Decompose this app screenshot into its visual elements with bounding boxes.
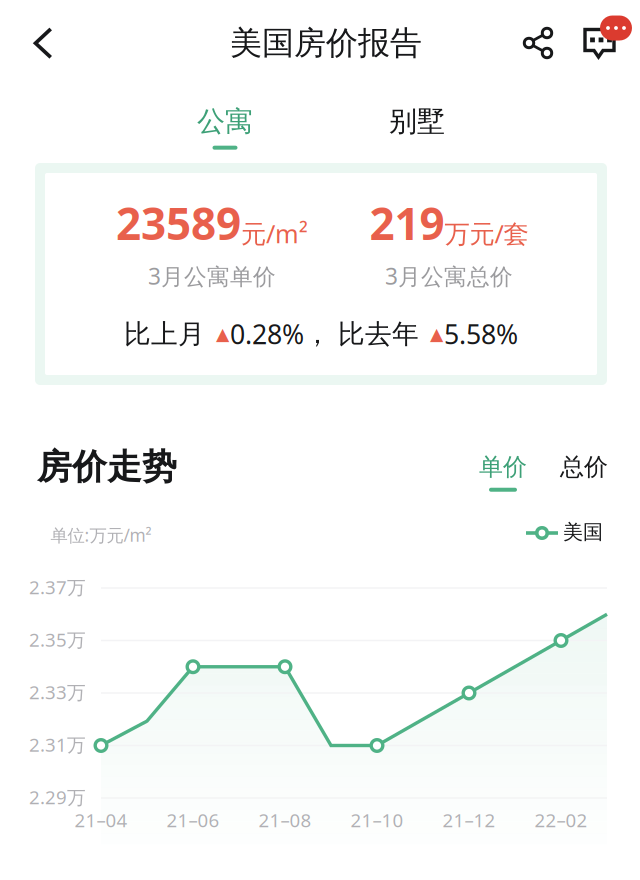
button[interactable]: 公寓 [150, 99, 300, 155]
staticText: 2.29万 [29, 785, 86, 809]
staticText: 23589 [116, 194, 241, 252]
button[interactable]: Share [511, 16, 565, 70]
staticText: ▲ [430, 324, 443, 344]
staticText: 房价走势 [37, 446, 177, 488]
button[interactable]: 别墅 [342, 99, 492, 155]
staticText: 21–04 [74, 808, 127, 832]
staticText: 21–10 [350, 808, 403, 832]
staticText: 3月公寓单价 [148, 261, 276, 291]
staticText: 万元/套 [444, 216, 528, 250]
button[interactable]: 总价 [549, 449, 619, 495]
staticText: 0.28% [230, 316, 304, 352]
staticText: 2.33万 [29, 680, 86, 704]
button[interactable]: Back [16, 15, 70, 71]
staticText: 2.37万 [29, 575, 86, 599]
staticText: 3月公寓总价 [385, 261, 513, 291]
staticText: 22–02 [534, 808, 587, 832]
staticText: 219 [369, 194, 444, 252]
staticText: 美国 [563, 520, 603, 544]
staticText: 单位:万元/m² [50, 523, 151, 546]
staticText: 单价 [479, 452, 527, 482]
staticText: 21–12 [442, 808, 495, 832]
staticText: 元/m² [241, 216, 308, 250]
staticText: 21–06 [166, 808, 219, 832]
staticText: 公寓 [197, 104, 253, 139]
staticText: ▲ [216, 324, 229, 344]
staticText: 美国房价报告 [230, 23, 422, 63]
staticText: 总价 [560, 452, 608, 482]
staticText: 比去年 [338, 318, 419, 350]
button[interactable]: 单价 [468, 449, 538, 495]
staticText: 2.31万 [29, 732, 86, 757]
staticText: 21–08 [258, 808, 311, 832]
staticText: 比上月 [124, 318, 205, 350]
staticText: 5.58% [444, 316, 518, 352]
staticText: ， [304, 318, 331, 350]
staticText: 别墅 [389, 104, 445, 139]
staticText: 2.35万 [29, 627, 86, 652]
button[interactable]: Feedback [580, 9, 636, 65]
